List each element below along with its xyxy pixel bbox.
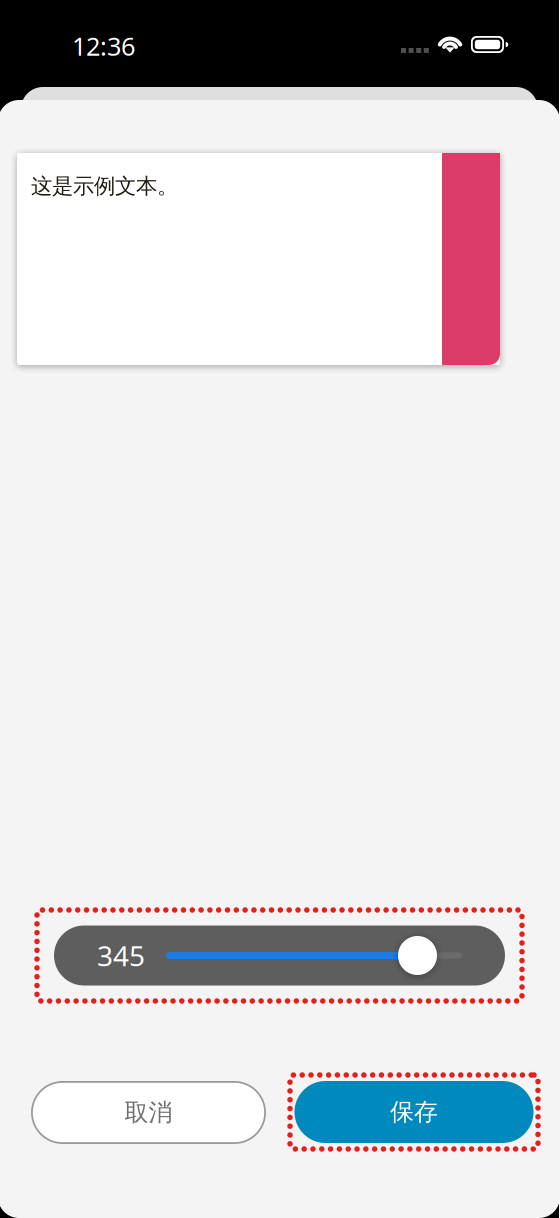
staticText: 这是示例文本。 — [31, 173, 178, 199]
button[interactable]: Value 345 — [37, 910, 522, 1001]
staticText: 保存 — [390, 1097, 438, 1127]
staticText: 取消 — [124, 1098, 172, 1127]
button[interactable]: 取消 — [31, 1081, 266, 1144]
button[interactable]: 这是示例文本。 — [17, 153, 500, 365]
button[interactable]: 保存 — [290, 1075, 538, 1149]
staticText: 345 — [97, 937, 145, 974]
staticText: 12:36 — [72, 29, 135, 63]
